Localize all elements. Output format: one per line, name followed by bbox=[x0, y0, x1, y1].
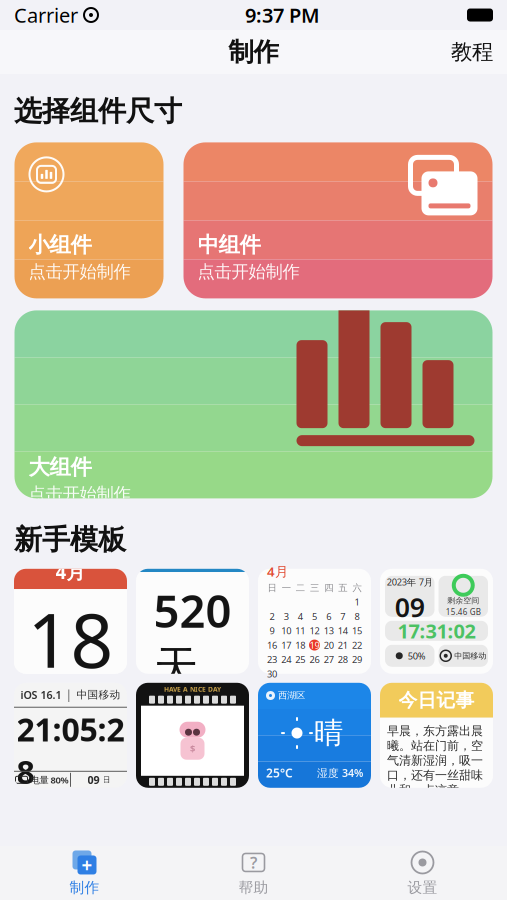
staticText: 21:05:28 bbox=[16, 708, 124, 793]
staticText: 27 bbox=[324, 653, 334, 666]
staticText: 4月 bbox=[55, 559, 85, 584]
staticText: | bbox=[65, 687, 72, 703]
staticText: 14 bbox=[338, 624, 348, 637]
staticText: 5 bbox=[312, 610, 317, 622]
staticText: 28 bbox=[338, 653, 348, 666]
staticText: 日 bbox=[102, 775, 110, 785]
staticText: iOS 16.1 bbox=[20, 688, 61, 702]
staticText: 18 bbox=[27, 589, 113, 688]
staticText: 点击开始制作 bbox=[197, 261, 299, 282]
staticText: 1 bbox=[354, 596, 359, 608]
staticText: 新手模板 bbox=[14, 522, 126, 557]
button[interactable]: HAVE A NICE DAY bbox=[136, 683, 249, 788]
staticText: 12 bbox=[309, 624, 319, 637]
button[interactable]: ? bbox=[169, 844, 338, 900]
staticText: 16 bbox=[267, 639, 277, 651]
staticText: 29 bbox=[352, 653, 362, 666]
staticText: 15 bbox=[352, 624, 362, 637]
staticText: 制作 bbox=[228, 36, 278, 67]
staticText: 三 bbox=[310, 582, 319, 594]
staticText: 7月14 bbox=[210, 704, 239, 718]
button[interactable]: 西湖区 bbox=[258, 683, 371, 788]
staticText: 中国移动 bbox=[76, 688, 120, 701]
button[interactable]: 我们在一起已经 bbox=[136, 569, 249, 674]
staticText: 六 bbox=[352, 582, 361, 594]
staticText: 四 bbox=[324, 582, 333, 594]
staticText: 18 bbox=[295, 639, 305, 651]
staticText: 3 bbox=[284, 610, 289, 622]
button[interactable]: 4月 bbox=[258, 569, 371, 674]
staticText: 9 bbox=[270, 624, 275, 637]
staticText: 21 bbox=[338, 639, 348, 651]
staticText: 7 bbox=[340, 610, 345, 622]
staticText: HAVE A NICE DAY bbox=[164, 685, 221, 694]
button[interactable]: 4月 bbox=[14, 569, 127, 674]
staticText: 西湖区 bbox=[278, 690, 305, 701]
button[interactable]: 中组件 bbox=[183, 142, 492, 298]
staticText: 点击开始制作 bbox=[28, 483, 130, 505]
staticText: $ bbox=[190, 742, 195, 755]
staticText: 15.46 GB bbox=[446, 607, 481, 617]
staticText: 520天 bbox=[153, 580, 231, 696]
staticText: 30 bbox=[267, 668, 277, 680]
staticText: 五 bbox=[338, 582, 347, 594]
button[interactable]: iOS 16.1 bbox=[14, 683, 127, 788]
staticText: + bbox=[81, 853, 92, 877]
staticText: 4月 bbox=[267, 562, 288, 580]
button[interactable]: 2023年 bbox=[380, 569, 493, 674]
staticText: 6 bbox=[326, 610, 331, 622]
staticText: 17:31:02 bbox=[397, 617, 475, 644]
staticText: 湿度 34% bbox=[317, 766, 363, 780]
staticText: 25°C bbox=[266, 765, 293, 781]
staticText: 19 bbox=[309, 639, 319, 651]
staticText: ? bbox=[250, 852, 257, 873]
staticText: 25 bbox=[295, 653, 305, 666]
staticText: 制作 bbox=[69, 878, 99, 896]
staticText: 20 bbox=[324, 639, 334, 651]
staticText: 2023年 bbox=[146, 704, 181, 718]
staticText: 选择组件尺寸 bbox=[14, 94, 182, 128]
staticText: 2 bbox=[270, 610, 275, 622]
staticText: 晴 bbox=[314, 715, 343, 751]
staticText: 一 bbox=[282, 582, 291, 594]
staticText: 17 bbox=[281, 639, 291, 651]
button[interactable]: + bbox=[0, 844, 169, 900]
button[interactable]: 今日记事 bbox=[380, 683, 493, 788]
staticText: 9:37 PM bbox=[245, 2, 320, 28]
staticText: 09 bbox=[395, 589, 425, 625]
staticText: 今日记事 bbox=[398, 689, 474, 712]
staticText: 13 bbox=[324, 624, 334, 637]
staticText: 10 bbox=[281, 624, 291, 637]
button[interactable]: 大组件 bbox=[14, 310, 492, 498]
staticText: 2023年 bbox=[387, 576, 416, 588]
button[interactable]: 设置 bbox=[338, 844, 507, 900]
staticText: 50% bbox=[408, 650, 426, 662]
staticText: 小组件 bbox=[28, 232, 91, 258]
staticText: 电量 80% bbox=[30, 774, 68, 786]
staticText: 7月 bbox=[419, 576, 433, 588]
staticText: 设置 bbox=[407, 878, 437, 896]
staticText: 剩余空间 bbox=[447, 596, 479, 606]
staticText: 点击开始制作 bbox=[28, 261, 130, 282]
button[interactable]: 小组件 bbox=[14, 142, 163, 298]
staticText: 11 bbox=[295, 624, 305, 637]
staticText: 中国移动 bbox=[454, 651, 486, 661]
staticText: Carrier bbox=[14, 2, 78, 28]
staticText: 帮助 bbox=[238, 878, 268, 896]
button[interactable]: 教程 bbox=[437, 31, 507, 73]
staticText: 4 bbox=[298, 610, 303, 622]
staticText: 教程 bbox=[451, 39, 493, 65]
staticText: 日 bbox=[268, 582, 277, 594]
staticText: 8 bbox=[354, 610, 359, 622]
staticText: 中组件 bbox=[197, 232, 260, 258]
staticText: 26 bbox=[309, 653, 319, 666]
staticText: 24 bbox=[281, 653, 291, 666]
staticText: 二 bbox=[296, 582, 305, 594]
staticText: 22 bbox=[352, 639, 362, 651]
staticText: 09 bbox=[87, 773, 99, 787]
staticText: 23 bbox=[267, 653, 277, 666]
staticText: 大组件 bbox=[28, 454, 91, 480]
staticText: 早晨，东方露出晨曦。站在门前，空气清新湿润，吸一口，还有一丝甜味儿和一点凉意。 bbox=[387, 724, 483, 797]
